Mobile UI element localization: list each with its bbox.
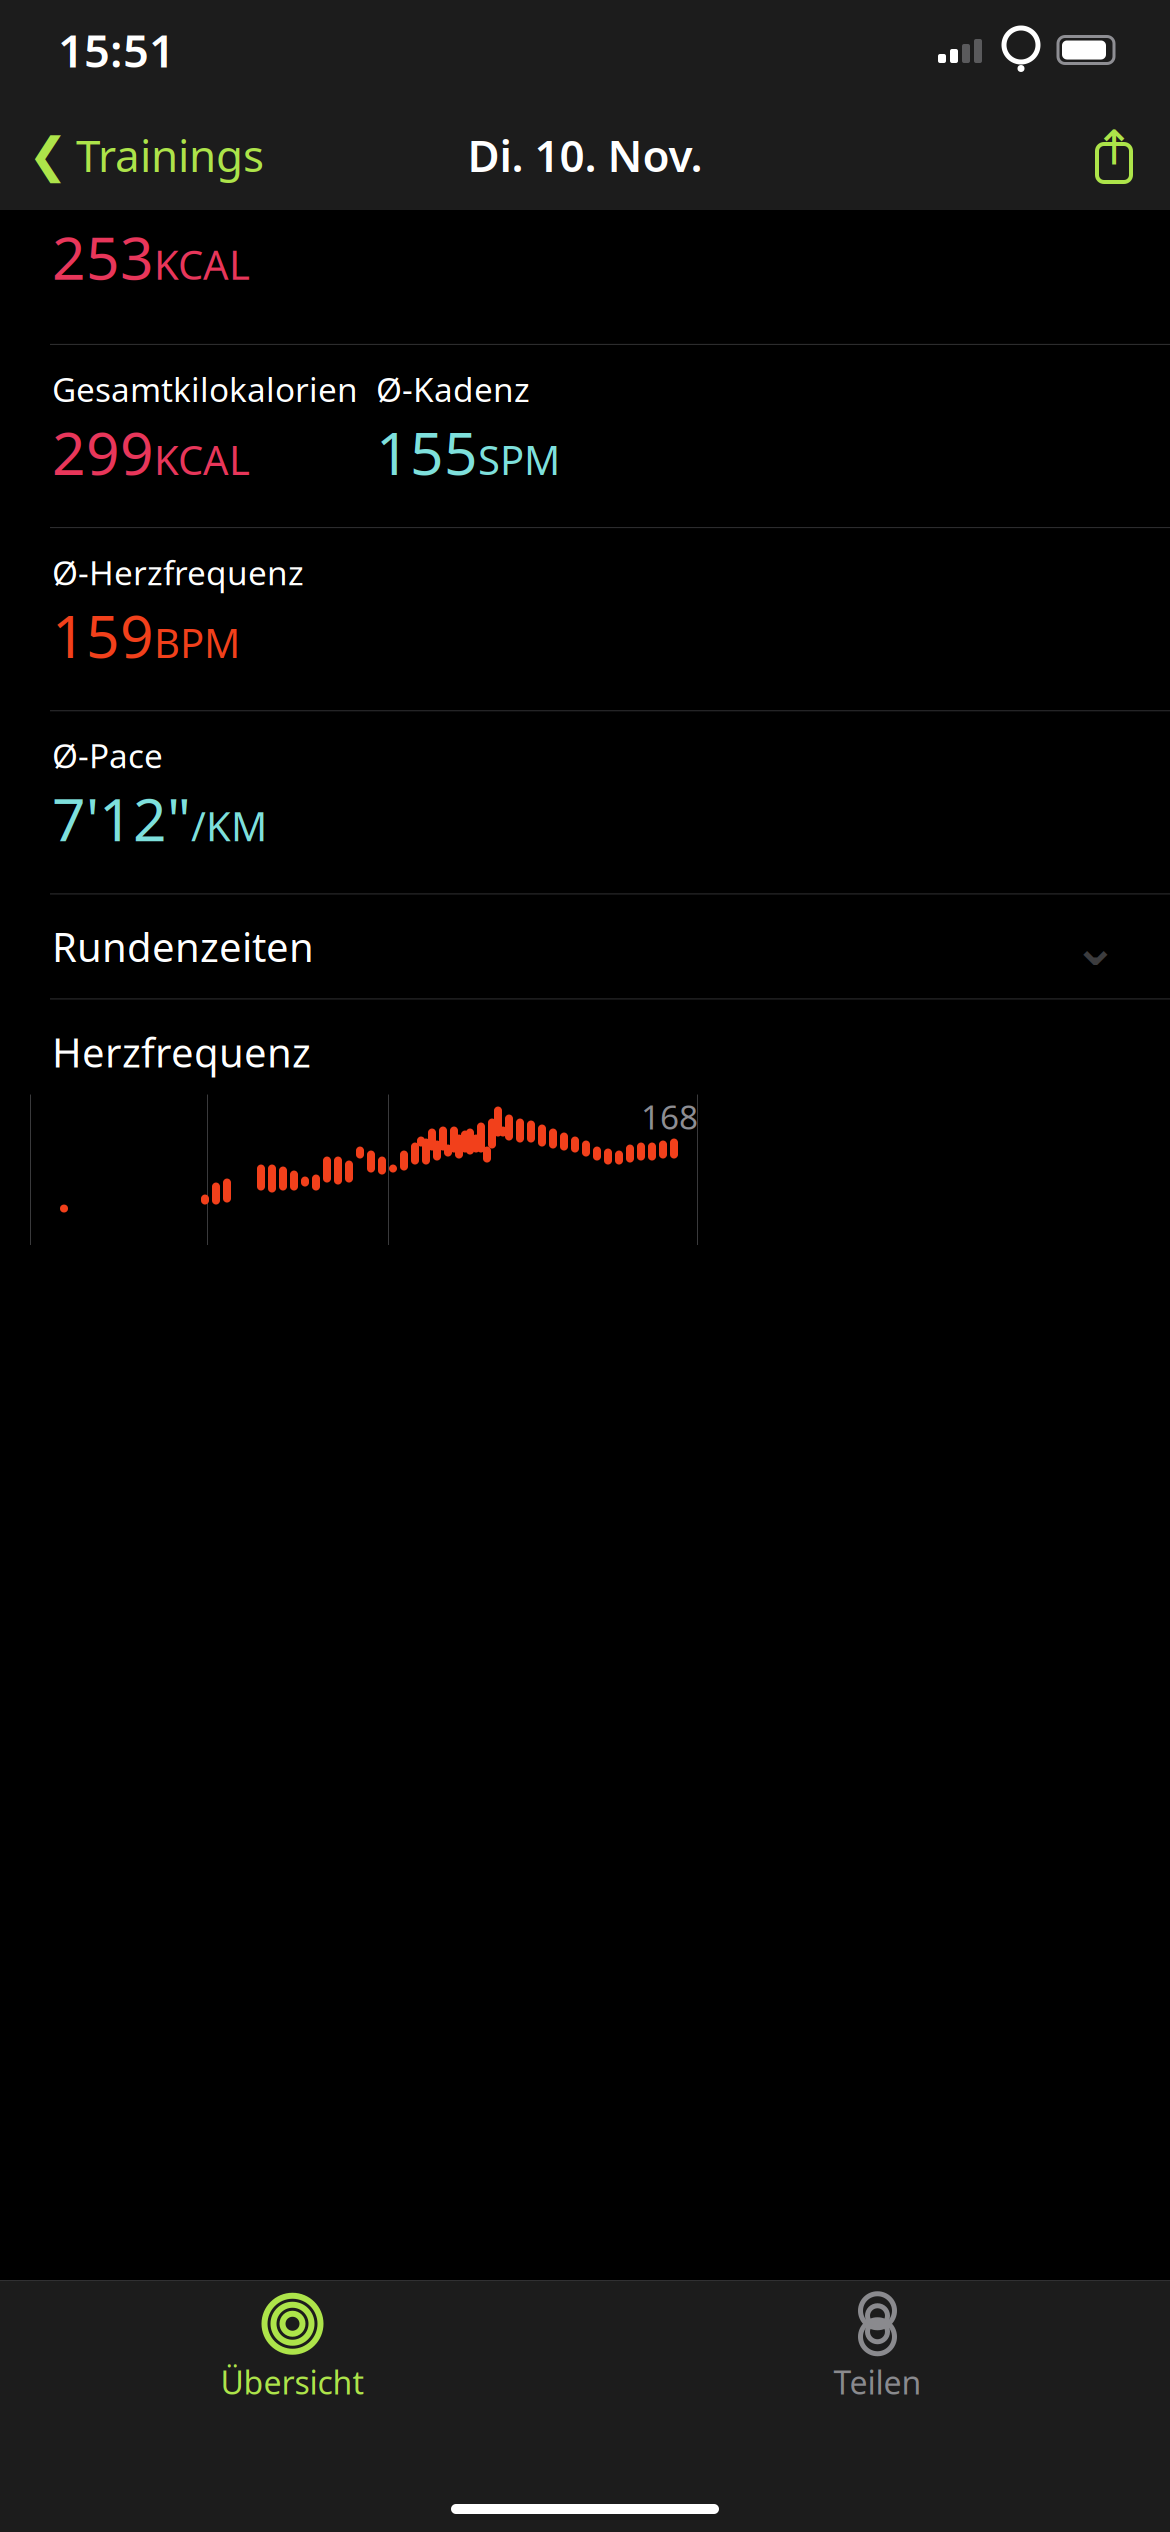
staticText: 15:51 — [58, 20, 175, 80]
staticText: KCAL — [154, 433, 250, 486]
button[interactable]: Rundenzeiten — [0, 894, 1170, 998]
staticText: 168 — [641, 1094, 698, 1139]
staticText: 159 — [52, 596, 154, 674]
staticText: SPM — [478, 433, 560, 486]
staticText: Herzfrequenz — [52, 1025, 311, 1078]
staticText: BPM — [154, 616, 240, 669]
button[interactable]: Teilen — [1088, 118, 1170, 192]
staticText: 7'12" — [52, 779, 191, 857]
staticText: Übersicht — [220, 2361, 364, 2403]
staticText: 155 — [376, 413, 478, 491]
staticText: Ø-Herzfrequenz — [52, 550, 304, 594]
button[interactable]: Übersicht — [0, 2293, 585, 2403]
staticText: Ø-Kadenz — [376, 367, 530, 411]
button[interactable]: ❮ — [0, 116, 264, 194]
staticText: Trainings — [76, 126, 264, 184]
staticText: Rundenzeiten — [52, 920, 314, 973]
staticText: Teilen — [833, 2361, 921, 2403]
staticText: Ø-Pace — [52, 733, 163, 778]
staticText: 253 — [52, 218, 154, 296]
staticText: ❮ — [28, 128, 68, 182]
staticText: Gesamtkilokalorien — [52, 367, 358, 411]
staticText: Di. 10. Nov. — [467, 126, 702, 184]
staticText: 299 — [52, 413, 154, 491]
staticText: KCAL — [154, 238, 250, 291]
button[interactable]: Teilen — [585, 2293, 1170, 2403]
staticText: ↑ — [1094, 121, 1134, 175]
staticText: ⌄ — [1073, 916, 1118, 977]
staticText: /KM — [191, 799, 267, 852]
